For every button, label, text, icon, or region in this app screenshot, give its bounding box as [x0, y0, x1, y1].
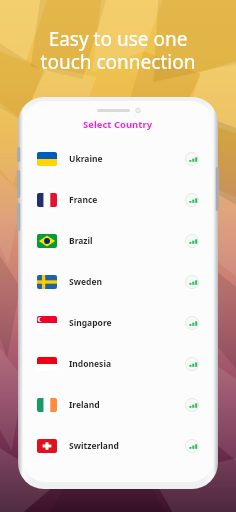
staticText: Select Country: [83, 118, 153, 131]
button[interactable]: Signal strength: [185, 234, 199, 248]
button[interactable]: France: [23, 179, 213, 220]
button[interactable]: Signal strength: [185, 316, 199, 330]
button[interactable]: Signal strength: [185, 275, 199, 289]
button[interactable]: Signal strength: [185, 152, 199, 166]
staticText: Brazil: [69, 235, 93, 247]
staticText: Indonesia: [69, 358, 112, 370]
button[interactable]: Signal strength: [185, 398, 199, 412]
staticText: France: [69, 194, 98, 206]
button[interactable]: Ukraine: [23, 138, 213, 179]
staticText: Ukraine: [69, 153, 103, 165]
button[interactable]: Ireland: [23, 384, 213, 425]
button[interactable]: Signal strength: [185, 439, 199, 453]
staticText: Singapore: [69, 317, 112, 329]
button[interactable]: Signal strength: [185, 357, 199, 371]
staticText: Easy to use one touch connection: [0, 26, 236, 75]
staticText: Switzerland: [69, 440, 119, 452]
button[interactable]: Signal strength: [185, 193, 199, 207]
staticText: Sweden: [69, 276, 103, 288]
staticText: Ireland: [69, 399, 100, 411]
button[interactable]: Brazil: [23, 220, 213, 261]
button[interactable]: Switzerland: [23, 425, 213, 466]
button[interactable]: Indonesia: [23, 343, 213, 384]
button[interactable]: Singapore: [23, 302, 213, 343]
button[interactable]: Sweden: [23, 261, 213, 302]
